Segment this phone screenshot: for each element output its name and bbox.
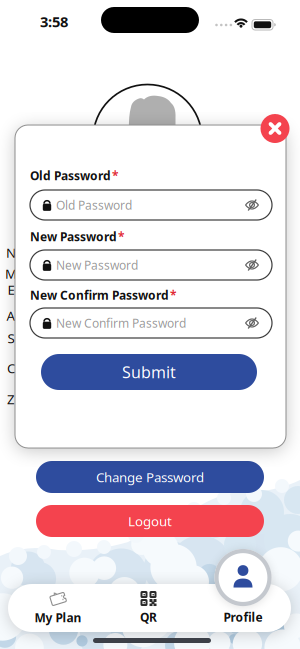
button[interactable]: My Plan — [23, 586, 93, 630]
staticText: My Plan — [34, 609, 81, 625]
staticText: E — [7, 281, 14, 298]
button[interactable]: Submit — [41, 354, 257, 390]
button[interactable]: Change Password — [36, 461, 264, 493]
staticText: New Confirm Password — [56, 315, 186, 331]
staticText: New Password — [30, 228, 117, 244]
staticText: A — [6, 307, 15, 324]
staticText: * — [118, 228, 125, 244]
button[interactable]: Logout — [36, 505, 264, 537]
staticText: S — [7, 329, 14, 347]
staticText: Z — [7, 390, 15, 408]
staticText: Change Password — [96, 468, 204, 486]
staticText: N — [6, 244, 16, 261]
button[interactable]: Close — [260, 114, 289, 143]
button[interactable]: Profile — [214, 549, 271, 625]
staticText: New Confirm Password — [30, 287, 169, 303]
staticText: * — [170, 287, 177, 303]
staticText: M — [5, 265, 17, 282]
staticText: 3:58 — [40, 12, 68, 31]
button[interactable]: QR — [123, 586, 173, 630]
staticText: C — [7, 359, 15, 377]
staticText: QR — [140, 609, 157, 625]
staticText: Old Password — [30, 167, 111, 183]
staticText: Submit — [122, 361, 176, 383]
staticText: Logout — [128, 512, 172, 530]
button[interactable]: Show password — [245, 317, 259, 329]
button[interactable]: Show password — [245, 259, 259, 271]
staticText: Profile — [223, 609, 262, 625]
staticText: Old Password — [56, 197, 132, 213]
staticText: New Password — [56, 257, 138, 273]
staticText: * — [112, 167, 119, 183]
button[interactable]: Show password — [245, 199, 259, 211]
